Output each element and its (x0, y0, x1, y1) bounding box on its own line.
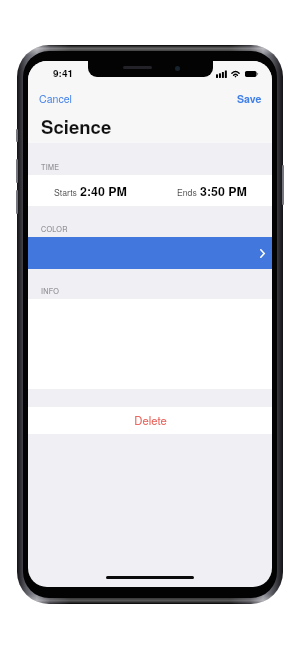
staticText: Ends (177, 186, 197, 198)
button[interactable]: Starts (28, 175, 150, 206)
staticText: 9:41 (53, 66, 74, 80)
button[interactable]: Choose colour (28, 237, 272, 269)
staticText: Starts (54, 186, 77, 198)
staticText: Save (237, 91, 262, 106)
staticText: 3:50 PM (200, 182, 247, 200)
staticText: INFO (41, 286, 60, 296)
button[interactable]: Ends (150, 175, 272, 206)
staticText: Delete (134, 412, 167, 428)
staticText: Cancel (39, 91, 72, 106)
button[interactable]: Cancel (28, 88, 83, 109)
staticText: 2:40 PM (80, 182, 127, 200)
button[interactable]: Save (227, 88, 272, 109)
staticText: TIME (41, 162, 60, 172)
staticText: Science (41, 113, 112, 140)
button[interactable]: Delete (28, 407, 272, 434)
staticText: COLOR (41, 224, 68, 234)
